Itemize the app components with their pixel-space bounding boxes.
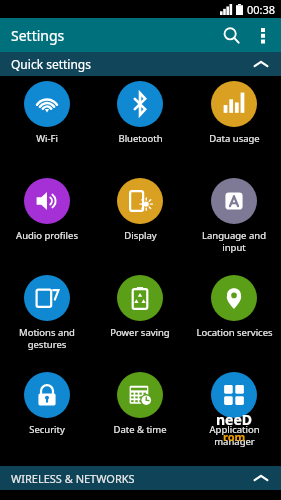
staticText: Application manager: [209, 423, 260, 448]
button[interactable]: Language and input: [187, 175, 281, 272]
staticText: Language and input: [202, 229, 266, 254]
button[interactable]: Display: [93, 175, 187, 272]
staticText: Location services: [196, 326, 273, 339]
staticText: Settings: [11, 26, 65, 45]
button[interactable]: Date & time: [93, 369, 187, 466]
button[interactable]: More options: [248, 20, 278, 50]
staticText: Bluetooth: [118, 132, 163, 145]
button[interactable]: Audio profiles: [0, 175, 93, 272]
staticText: rom: [223, 429, 246, 444]
button[interactable]: Data usage: [187, 78, 281, 175]
staticText: 00:38: [247, 2, 276, 17]
button[interactable]: Search: [214, 18, 248, 52]
button[interactable]: Application manager: [187, 369, 281, 466]
button[interactable]: WIRELESS & NETWORKS: [0, 466, 281, 490]
staticText: Motions and gestures: [19, 326, 75, 351]
staticText: Quick settings: [11, 56, 91, 72]
staticText: Wi-Fi: [36, 132, 58, 145]
staticText: Audio profiles: [16, 229, 78, 242]
button[interactable]: Motions and gestures: [0, 272, 93, 369]
button[interactable]: Quick settings: [0, 52, 281, 76]
button[interactable]: Location services: [187, 272, 281, 369]
button[interactable]: Bluetooth: [93, 78, 187, 175]
button[interactable]: Wi-Fi: [0, 78, 93, 175]
staticText: Display: [124, 229, 157, 242]
staticText: WIRELESS & NETWORKS: [11, 471, 135, 486]
button[interactable]: Security: [0, 369, 93, 466]
staticText: neeD: [216, 410, 253, 429]
button[interactable]: Power saving: [93, 272, 187, 369]
staticText: Power saving: [110, 326, 170, 339]
staticText: Security: [29, 423, 65, 436]
staticText: Data usage: [209, 132, 260, 145]
staticText: Date & time: [113, 423, 167, 436]
